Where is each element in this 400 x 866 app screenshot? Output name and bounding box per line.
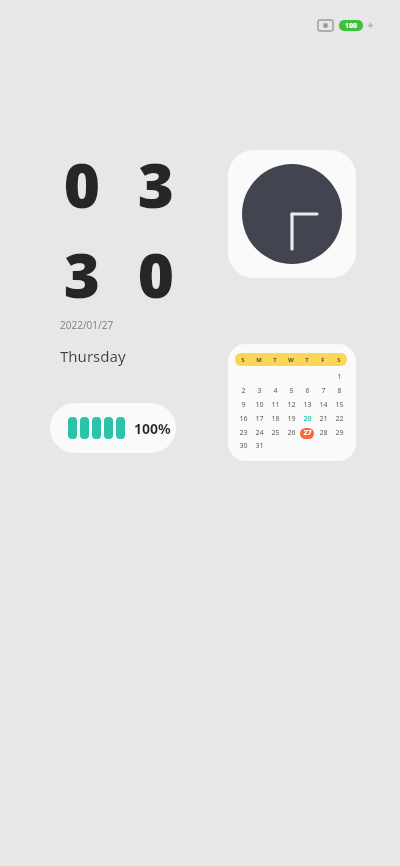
button[interactable]: Calendar widget — [228, 344, 356, 461]
staticText: 11 — [271, 400, 280, 410]
staticText: 14 — [319, 400, 328, 410]
staticText: 9 — [241, 400, 246, 410]
staticText: 100 — [345, 21, 358, 31]
staticText: 0 — [56, 142, 108, 226]
staticText: 31 — [255, 441, 264, 451]
staticText: 3 — [56, 232, 108, 316]
staticText: 5 — [289, 386, 294, 396]
staticText: 29 — [335, 428, 344, 438]
staticText: 3 — [130, 142, 182, 226]
staticText: 28 — [319, 428, 328, 438]
button[interactable]: 0 — [56, 142, 182, 316]
staticText: S — [331, 356, 347, 364]
other: Battery 100 percent — [339, 20, 363, 31]
staticText: 24 — [255, 428, 264, 438]
staticText: 6 — [305, 386, 310, 396]
staticText: 27 — [303, 428, 312, 438]
button[interactable]: 2022/01/27 — [60, 318, 126, 366]
staticText: 17 — [255, 414, 264, 424]
staticText: 4 — [273, 386, 278, 396]
staticText: 18 — [271, 414, 280, 424]
staticText: T — [267, 356, 283, 364]
staticText: T — [299, 356, 315, 364]
staticText: S — [235, 356, 251, 364]
staticText: 8 — [337, 386, 342, 396]
staticText: 15 — [335, 400, 344, 410]
staticText: 3 — [257, 386, 262, 396]
button[interactable]: 100% — [50, 403, 176, 453]
staticText: 20 — [303, 414, 312, 424]
staticText: M — [251, 356, 267, 364]
staticText: 22 — [335, 414, 344, 424]
staticText: 0 — [130, 232, 182, 316]
staticText: 23 — [239, 428, 248, 438]
other: Network — [318, 20, 333, 31]
staticText: 2 — [241, 386, 246, 396]
staticText: F — [315, 356, 331, 364]
staticText: 21 — [319, 414, 328, 424]
staticText: 19 — [287, 414, 296, 424]
staticText: Thursday — [60, 346, 126, 366]
button[interactable]: Analog clock widget — [228, 150, 356, 278]
staticText: 7 — [321, 386, 326, 396]
staticText: 1 — [337, 372, 342, 382]
staticText: 13 — [303, 400, 312, 410]
staticText: 12 — [287, 400, 296, 410]
staticText: 25 — [271, 428, 280, 438]
staticText: 100% — [134, 419, 171, 438]
staticText: 26 — [287, 428, 296, 438]
staticText: 30 — [239, 441, 248, 451]
staticText: 10 — [255, 400, 264, 410]
staticText: W — [283, 356, 299, 364]
staticText: 16 — [239, 414, 248, 424]
staticText: 2022/01/27 — [60, 318, 114, 332]
